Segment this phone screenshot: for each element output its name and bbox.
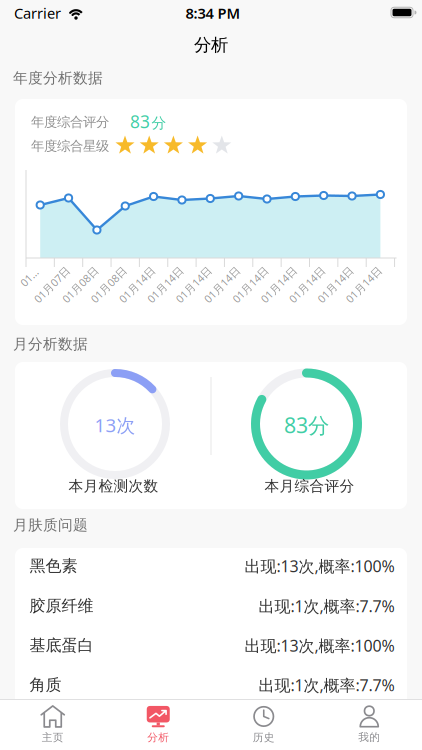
- staticText: Carrier: [14, 3, 61, 23]
- staticText: 出现:1次,概率:7.7%: [258, 595, 394, 617]
- staticText: 出现:1次,概率:7.7%: [258, 674, 394, 696]
- staticText: 83: [130, 110, 150, 133]
- staticText: 年度综合星级: [31, 138, 109, 154]
- staticText: 01月07日: [29, 277, 75, 292]
- staticText: 01月08日: [86, 277, 132, 292]
- button[interactable]: 分析: [118, 701, 198, 749]
- staticText: 角质: [29, 675, 61, 695]
- staticText: 01月14日: [256, 277, 302, 292]
- staticText: 01…: [19, 270, 39, 285]
- staticText: 胶原纤维: [29, 596, 93, 616]
- staticText: 01月14日: [171, 277, 217, 292]
- staticText: 主页: [42, 731, 64, 744]
- staticText: 分析: [194, 34, 228, 56]
- staticText: 01月08日: [57, 277, 103, 292]
- staticText: 8:34 PM: [185, 3, 240, 23]
- staticText: 83分: [284, 411, 329, 439]
- staticText: 历史: [253, 731, 275, 744]
- button[interactable]: 我的: [329, 701, 409, 749]
- staticText: 01月14日: [313, 277, 359, 292]
- staticText: 01月14日: [284, 277, 330, 292]
- staticText: 月分析数据: [13, 335, 88, 353]
- button[interactable]: 主页: [13, 701, 93, 749]
- staticText: 01月14日: [114, 277, 160, 292]
- staticText: 01月14日: [227, 277, 273, 292]
- staticText: 01月14日: [341, 277, 387, 292]
- staticText: 月肤质问题: [13, 516, 88, 534]
- staticText: 我的: [358, 731, 380, 744]
- staticText: 基底蛋白: [29, 636, 93, 655]
- staticText: 01月14日: [142, 277, 188, 292]
- button[interactable]: 历史: [224, 701, 304, 749]
- staticText: 黑色素: [29, 556, 77, 576]
- staticText: 本月综合评分: [264, 477, 354, 495]
- staticText: 出现:13次,概率:100%: [244, 635, 394, 656]
- staticText: 出现:13次,概率:100%: [244, 555, 394, 577]
- staticText: 年度分析数据: [13, 69, 103, 87]
- staticText: 本月检测次数: [68, 477, 158, 495]
- staticText: 13次: [94, 413, 135, 437]
- staticText: 分: [151, 114, 166, 132]
- staticText: 年度综合评分: [31, 114, 109, 130]
- staticText: 分析: [147, 731, 169, 744]
- staticText: 01月14日: [199, 277, 245, 292]
